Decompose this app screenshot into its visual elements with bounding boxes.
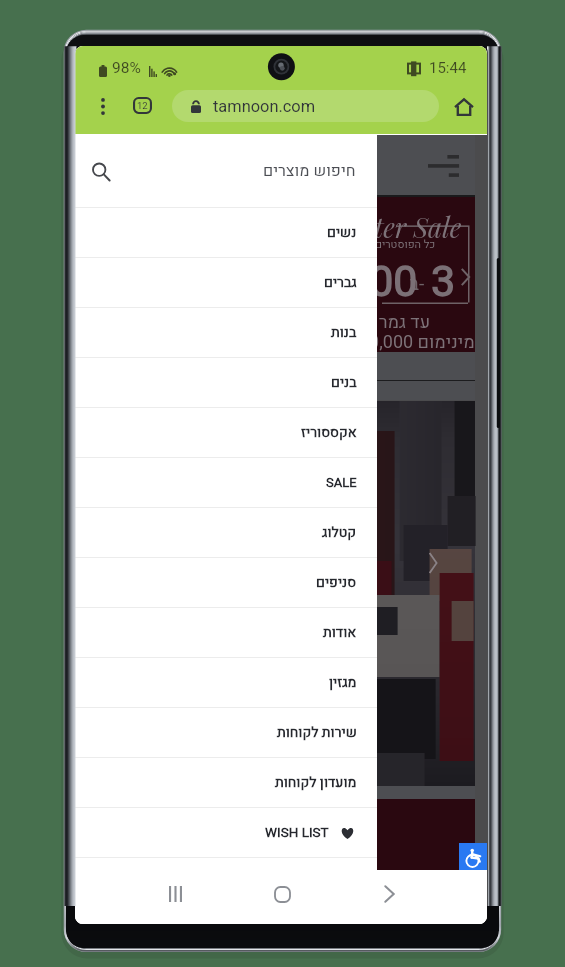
- other: Menu: [428, 155, 459, 180]
- staticText: ב-: [409, 270, 425, 298]
- button[interactable]: tamnoon.com: [172, 90, 439, 122]
- button[interactable]: Accessibility: [459, 843, 487, 872]
- button[interactable]: גברים: [75, 258, 377, 307]
- staticText: חיפוש מוצרים: [263, 159, 356, 183]
- button[interactable]: סניפים: [75, 558, 377, 607]
- button[interactable]: מועדון לקוחות: [75, 758, 377, 807]
- button[interactable]: בנות: [75, 308, 377, 357]
- button[interactable]: WISH LIST: [75, 808, 377, 857]
- staticText: בנות: [331, 322, 357, 343]
- button[interactable]: אודות: [75, 608, 377, 657]
- staticText: 12: [137, 100, 148, 111]
- button[interactable]: Tabs: [133, 97, 152, 114]
- staticText: WISH LIST: [265, 823, 329, 843]
- button[interactable]: נשים: [75, 208, 377, 257]
- other: Search: [92, 163, 110, 181]
- button[interactable]: Home: [449, 92, 479, 122]
- button[interactable]: SALE: [75, 458, 377, 507]
- staticText: 98%: [112, 59, 141, 77]
- staticText: גברים: [324, 272, 357, 293]
- button[interactable]: Home: [266, 878, 298, 910]
- button[interactable]: קטלוג: [75, 508, 377, 557]
- staticText: Winter Sale: [326, 209, 462, 245]
- staticText: אקססוריז: [301, 422, 357, 443]
- staticText: אודות: [323, 622, 357, 643]
- staticText: קטלוג: [322, 522, 357, 543]
- button[interactable]: More options: [88, 91, 118, 121]
- staticText: שירות לקוחות: [277, 722, 357, 743]
- staticText: כל הפוסטרים והקפוצ'ונים: [320, 236, 436, 252]
- staticText: SALE: [326, 473, 357, 492]
- button[interactable]: בנים: [75, 358, 377, 407]
- button[interactable]: Back: [373, 878, 405, 910]
- staticText: 3: [431, 251, 456, 314]
- staticText: מגזין: [329, 672, 357, 693]
- staticText: מינימום 10,000: [359, 329, 475, 352]
- staticText: עד גמר המלאי: [326, 309, 431, 335]
- staticText: tamnoon.com: [213, 97, 316, 116]
- button[interactable]: אקססוריז: [75, 408, 377, 457]
- staticText: מועדון לקוחות: [275, 772, 357, 793]
- button[interactable]: Recent apps: [159, 878, 191, 910]
- staticText: נשים: [327, 222, 357, 243]
- staticText: 15:44: [429, 59, 467, 77]
- staticText: 100: [345, 251, 418, 314]
- staticText: סניפים: [316, 572, 357, 593]
- button[interactable]: מגזין: [75, 658, 377, 707]
- staticText: בנים: [331, 372, 357, 393]
- button[interactable]: שירות לקוחות: [75, 708, 377, 757]
